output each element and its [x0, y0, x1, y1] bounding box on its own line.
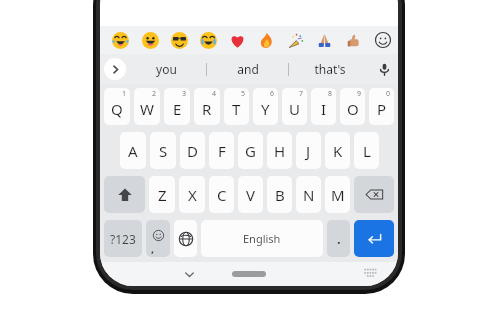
- button[interactable]: P: [369, 88, 394, 125]
- button[interactable]: E: [164, 88, 190, 125]
- staticText: C: [217, 185, 227, 205]
- staticText: J: [306, 141, 311, 161]
- staticText: Y: [261, 99, 270, 119]
- button[interactable]: you: [126, 54, 206, 84]
- button[interactable]: Switch keyboard: [360, 264, 380, 284]
- staticText: T: [232, 99, 241, 119]
- button[interactable]: Emoji: [105, 26, 135, 54]
- button[interactable]: Emoji: [310, 26, 339, 54]
- staticText: ?123: [110, 231, 136, 247]
- button[interactable]: F: [209, 132, 234, 169]
- button[interactable]: Q: [104, 88, 130, 125]
- button[interactable]: Emoji: [252, 26, 281, 54]
- staticText: D: [187, 141, 198, 161]
- button[interactable]: X: [179, 176, 205, 213]
- button[interactable]: Emoji: [146, 220, 170, 257]
- button[interactable]: N: [296, 176, 321, 213]
- button[interactable]: G: [238, 132, 263, 169]
- button[interactable]: Emoji: [194, 26, 223, 54]
- button[interactable]: K: [325, 132, 350, 169]
- button[interactable]: V: [238, 176, 263, 213]
- staticText: K: [333, 141, 343, 161]
- staticText: and: [237, 61, 259, 77]
- button[interactable]: Expand toolbar: [104, 58, 126, 80]
- button[interactable]: Emoji: [135, 26, 165, 54]
- button[interactable]: D: [180, 132, 205, 169]
- staticText: Z: [158, 185, 167, 205]
- button[interactable]: Y: [253, 88, 278, 125]
- button[interactable]: English: [201, 220, 323, 257]
- button[interactable]: Emoji: [165, 26, 194, 54]
- button[interactable]: .: [327, 220, 350, 257]
- button[interactable]: C: [209, 176, 234, 213]
- button[interactable]: Enter: [354, 220, 394, 257]
- staticText: R: [202, 99, 212, 119]
- button[interactable]: M: [325, 176, 350, 213]
- staticText: H: [274, 141, 286, 161]
- button[interactable]: that's: [289, 54, 370, 84]
- staticText: G: [245, 141, 256, 161]
- staticText: that's: [314, 61, 346, 77]
- staticText: E: [173, 99, 182, 119]
- staticText: 8: [328, 89, 333, 99]
- button[interactable]: Change language: [174, 220, 197, 257]
- staticText: English: [243, 231, 281, 246]
- staticText: 7: [299, 89, 304, 99]
- button[interactable]: and: [207, 54, 288, 84]
- button[interactable]: Backspace: [354, 176, 394, 213]
- staticText: ,: [151, 241, 155, 256]
- button[interactable]: A: [120, 132, 146, 169]
- button[interactable]: H: [267, 132, 292, 169]
- staticText: A: [128, 141, 138, 161]
- button[interactable]: L: [354, 132, 379, 169]
- button[interactable]: J: [296, 132, 321, 169]
- button[interactable]: I: [311, 88, 336, 125]
- staticText: O: [347, 99, 359, 119]
- button[interactable]: S: [150, 132, 176, 169]
- button[interactable]: Emoji: [223, 26, 252, 54]
- staticText: 4: [212, 89, 217, 99]
- button[interactable]: Shift: [104, 176, 145, 213]
- button[interactable]: W: [134, 88, 160, 125]
- staticText: 0: [386, 89, 391, 99]
- staticText: L: [363, 141, 371, 161]
- staticText: you: [156, 61, 177, 77]
- button[interactable]: Emoji: [339, 26, 368, 54]
- button[interactable]: R: [194, 88, 220, 125]
- staticText: N: [303, 185, 315, 205]
- button[interactable]: U: [282, 88, 307, 125]
- staticText: 2: [152, 89, 157, 99]
- button[interactable]: ?123: [104, 220, 142, 257]
- staticText: V: [246, 185, 256, 205]
- staticText: I: [321, 99, 327, 119]
- staticText: 9: [357, 89, 362, 99]
- staticText: F: [218, 141, 226, 161]
- staticText: W: [140, 99, 154, 119]
- staticText: S: [159, 141, 168, 161]
- staticText: X: [188, 185, 197, 205]
- staticText: Q: [111, 99, 123, 119]
- button[interactable]: O: [340, 88, 365, 125]
- button[interactable]: Z: [149, 176, 175, 213]
- button[interactable]: B: [267, 176, 292, 213]
- staticText: 1: [122, 89, 127, 99]
- staticText: M: [331, 185, 345, 205]
- staticText: B: [275, 185, 285, 205]
- staticText: .: [337, 230, 341, 248]
- staticText: 6: [270, 89, 275, 99]
- staticText: P: [377, 99, 387, 119]
- button[interactable]: More emoji: [368, 26, 398, 54]
- staticText: 3: [182, 89, 187, 99]
- staticText: 5: [241, 89, 246, 99]
- staticText: U: [289, 99, 300, 119]
- button[interactable]: Hide keyboard: [178, 263, 200, 285]
- button[interactable]: Voice input: [370, 54, 398, 84]
- button[interactable]: Emoji: [281, 26, 310, 54]
- button[interactable]: T: [224, 88, 249, 125]
